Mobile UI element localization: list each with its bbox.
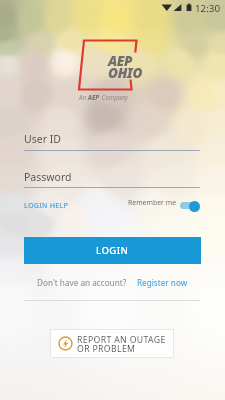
button[interactable]: Register now bbox=[137, 277, 188, 288]
staticText: Remember me bbox=[128, 198, 177, 207]
button[interactable]: LOGIN bbox=[24, 237, 201, 264]
staticText: Password bbox=[24, 170, 72, 184]
staticText: 12:30 bbox=[195, 2, 221, 15]
staticText: AEP bbox=[88, 93, 100, 101]
staticText: Company bbox=[100, 93, 128, 101]
staticText: LOGIN bbox=[96, 244, 129, 257]
button[interactable]: REPORT AN OUTAGE OR PROBLEM bbox=[50, 329, 174, 358]
staticText: AEP OHIO bbox=[108, 52, 143, 82]
staticText: An bbox=[79, 93, 88, 101]
staticText: LOGIN HELP bbox=[24, 200, 69, 210]
staticText: Register now bbox=[137, 277, 188, 288]
staticText: User ID bbox=[24, 132, 61, 146]
staticText: Don't have an account? bbox=[37, 277, 127, 288]
button[interactable]: LOGIN HELP bbox=[22, 198, 71, 212]
button[interactable]: Remember me bbox=[126, 196, 202, 214]
staticText: REPORT AN OUTAGE OR PROBLEM bbox=[77, 334, 166, 354]
